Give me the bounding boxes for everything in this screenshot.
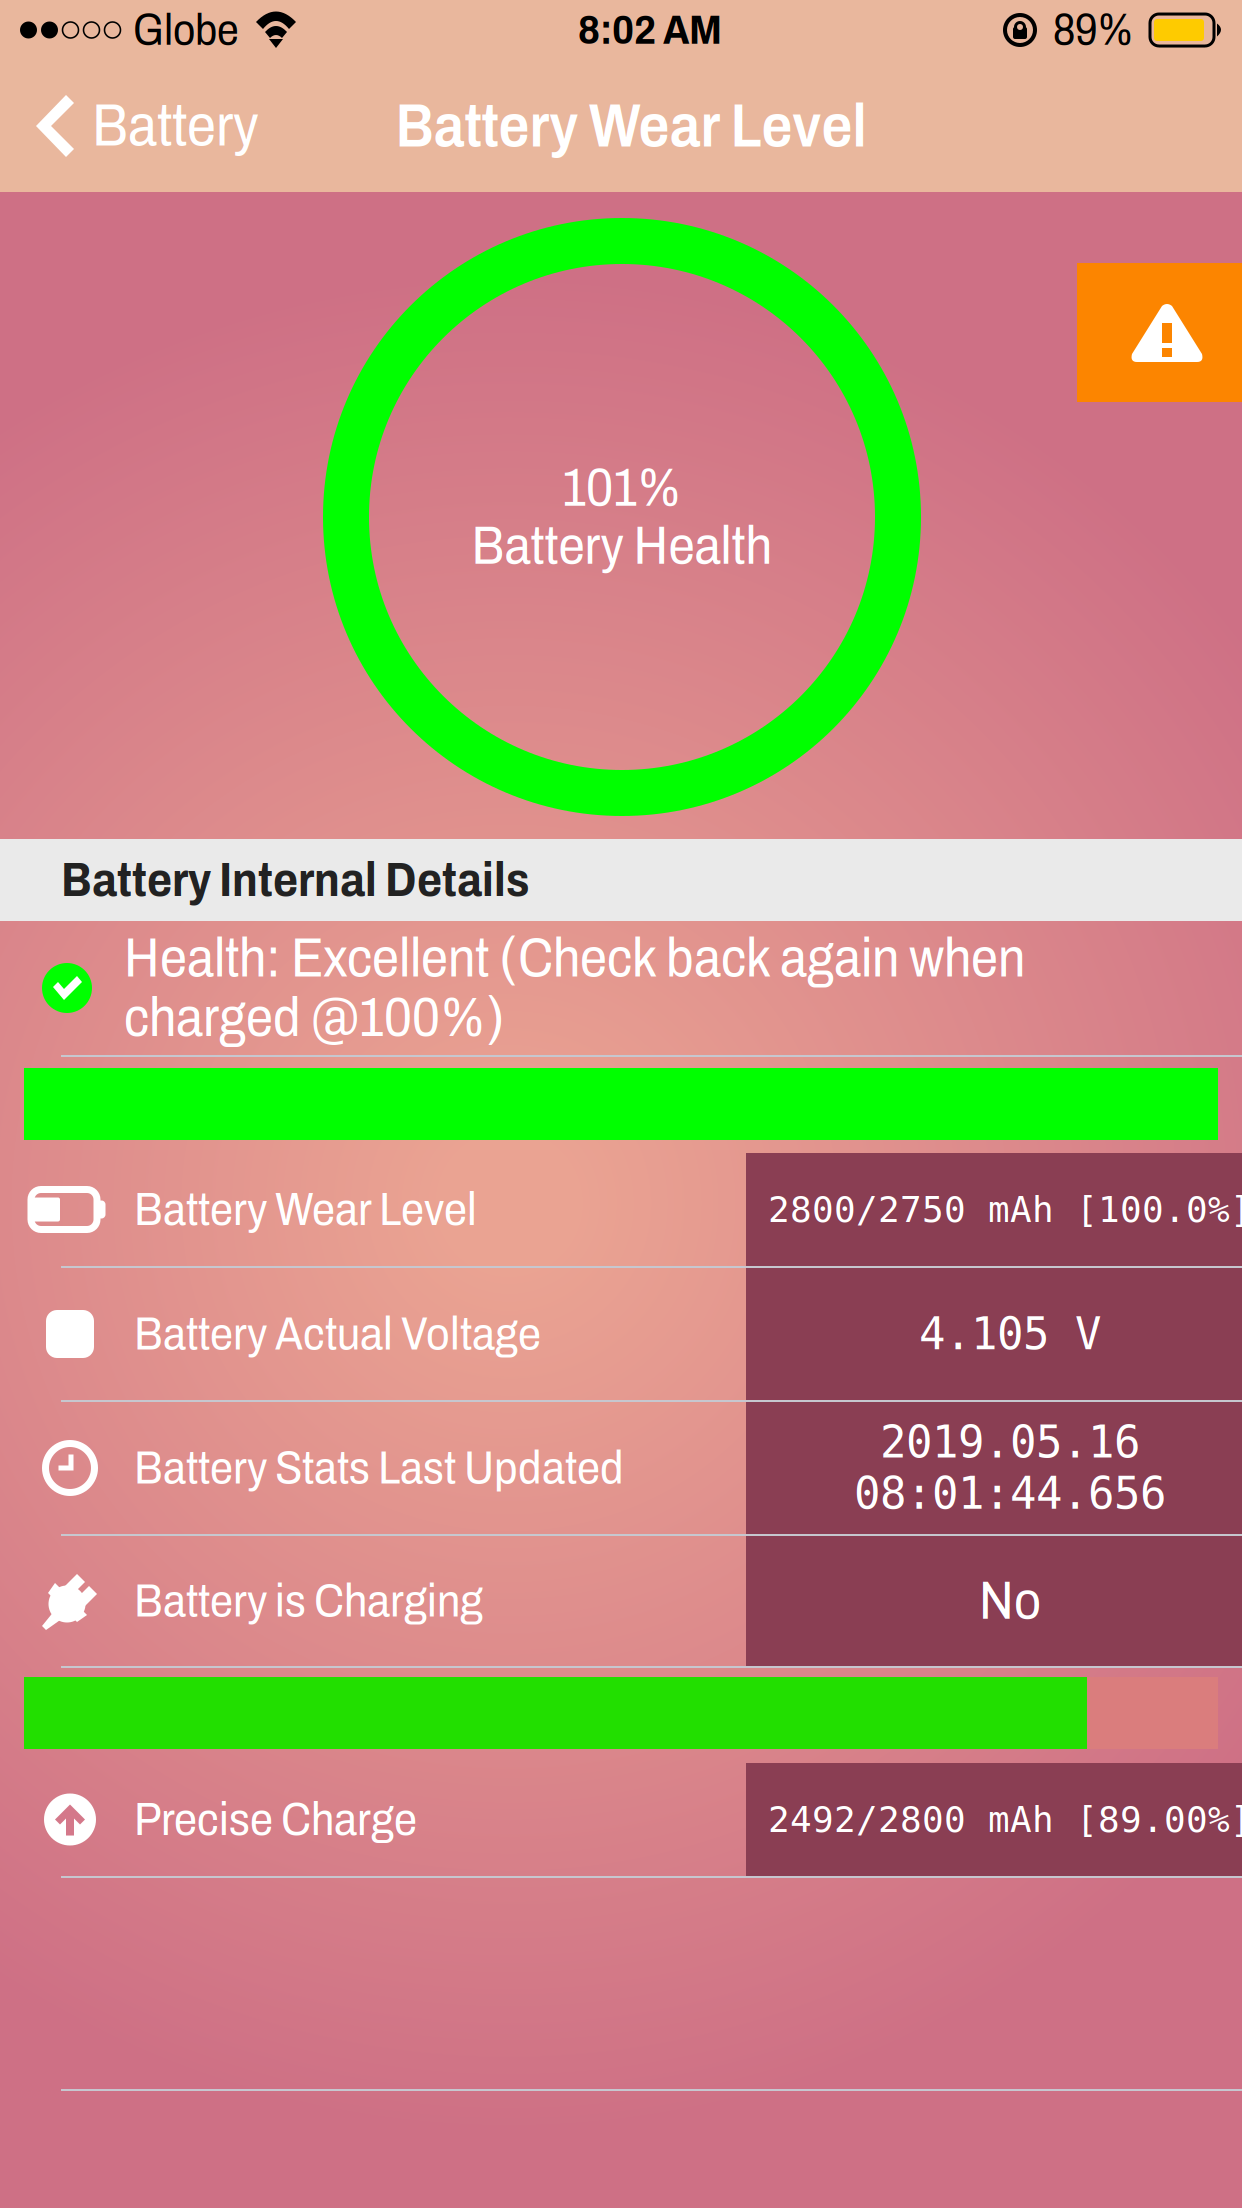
- staticText: Health: Excellent (Check back again when…: [124, 928, 1025, 1047]
- staticText: Battery Wear Level: [395, 93, 866, 159]
- staticText: 4.105 V: [919, 1308, 1101, 1360]
- staticText: Battery Wear Level: [134, 1184, 477, 1235]
- button[interactable]: Battery: [0, 60, 277, 192]
- button[interactable]: No: [0, 1536, 1242, 1666]
- staticText: No: [979, 1572, 1041, 1630]
- button[interactable]: 2019.05.16: [0, 1402, 1242, 1534]
- button[interactable]: Health: Excellent (Check back again when…: [0, 921, 1242, 1055]
- staticText: 2800/2750 mAh [100.0%]: [768, 1188, 1242, 1230]
- staticText: 2019.05.16: [880, 1417, 1140, 1468]
- staticText: 2492/2800 mAh [89.00%]: [768, 1798, 1242, 1840]
- staticText: Precise Charge: [134, 1794, 417, 1845]
- staticText: Battery: [92, 94, 259, 158]
- staticText: 8:02 AM: [578, 7, 722, 52]
- staticText: 89%: [1053, 6, 1134, 54]
- staticText: Battery Stats Last Updated: [134, 1443, 624, 1493]
- staticText: 101%: [562, 459, 682, 517]
- staticText: 08:01:44.656: [854, 1468, 1166, 1519]
- staticText: Globe: [133, 6, 239, 54]
- button[interactable]: 2800/2750 mAh [100.0%]: [0, 1153, 1242, 1266]
- staticText: Battery Actual Voltage: [134, 1309, 541, 1359]
- button[interactable]: 2492/2800 mAh [89.00%]: [0, 1763, 1242, 1876]
- staticText: Battery is Charging: [134, 1576, 483, 1626]
- button[interactable]: 4.105 V: [0, 1268, 1242, 1400]
- staticText: Battery Internal Details: [61, 854, 529, 906]
- staticText: Battery Health: [471, 517, 772, 575]
